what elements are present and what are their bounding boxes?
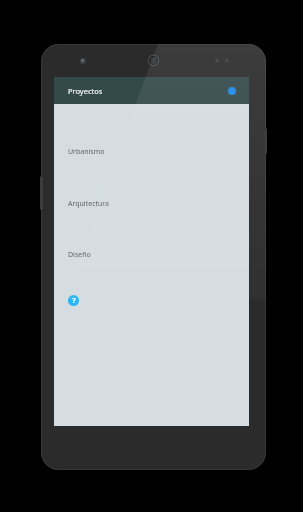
staticText: ? <box>72 296 76 306</box>
staticText: Arquitectura <box>68 199 110 209</box>
button[interactable]: Help <box>54 290 249 310</box>
button[interactable]: Arquitectura <box>54 197 249 211</box>
button[interactable]: Account <box>225 84 239 98</box>
staticText: Proyectos <box>68 86 103 96</box>
other: Help <box>68 295 79 306</box>
button[interactable]: Urbanismo <box>54 145 249 159</box>
staticText: Diseño <box>68 250 91 260</box>
staticText: Urbanismo <box>68 147 105 157</box>
button[interactable]: Diseño <box>54 248 249 262</box>
